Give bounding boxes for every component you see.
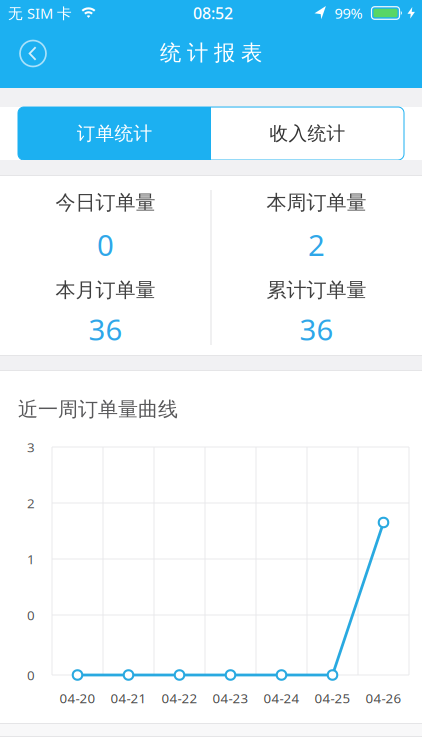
staticText: 2 bbox=[308, 225, 325, 264]
staticText: 36 bbox=[299, 309, 333, 348]
staticText: 订单统计 bbox=[76, 122, 152, 145]
staticText: 收入统计 bbox=[269, 122, 345, 145]
staticText: 无 SIM 卡 bbox=[8, 3, 72, 23]
staticText: 计 bbox=[187, 40, 208, 66]
staticText: 04-21 bbox=[110, 689, 146, 707]
staticText: 统 bbox=[160, 40, 181, 66]
staticText: 0 bbox=[27, 666, 35, 684]
staticText: 3 bbox=[27, 438, 35, 456]
staticText: 0 bbox=[97, 225, 114, 264]
staticText: 04-26 bbox=[365, 689, 401, 707]
staticText: 04-23 bbox=[212, 689, 248, 707]
staticText: 1 bbox=[27, 550, 35, 568]
staticText: 04-25 bbox=[314, 689, 350, 707]
button[interactable]: 收入统计 bbox=[211, 107, 404, 160]
staticText: 报 bbox=[214, 40, 235, 66]
staticText: 今日订单量 bbox=[55, 190, 155, 215]
staticText: 04-20 bbox=[59, 689, 95, 707]
button[interactable]: Back bbox=[20, 40, 46, 66]
button[interactable]: 订单统计 bbox=[18, 107, 211, 160]
staticText: 04-22 bbox=[161, 689, 197, 707]
staticText: 04-24 bbox=[263, 689, 299, 707]
staticText: 99% bbox=[334, 3, 362, 23]
staticText: 2 bbox=[27, 494, 35, 512]
staticText: 08:52 bbox=[193, 2, 233, 24]
staticText: 累计订单量 bbox=[266, 278, 366, 302]
staticText: 表 bbox=[241, 40, 262, 66]
staticText: 36 bbox=[88, 309, 122, 348]
staticText: 本周订单量 bbox=[266, 190, 366, 215]
staticText: 0 bbox=[27, 606, 35, 624]
staticText: 近一周订单量曲线 bbox=[18, 397, 178, 422]
staticText: 本月订单量 bbox=[55, 278, 155, 302]
